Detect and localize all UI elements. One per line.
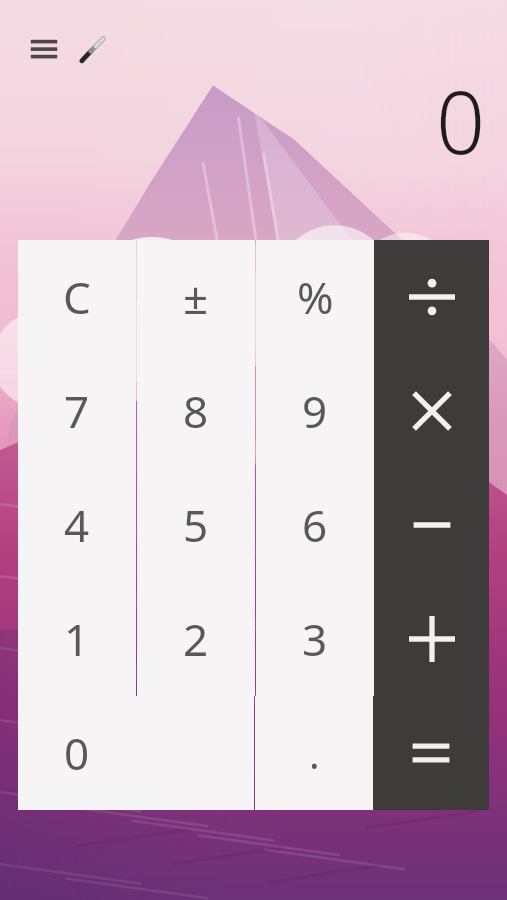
button[interactable]: 4	[18, 468, 136, 582]
button[interactable]: Multiply	[374, 354, 489, 468]
staticText: 0	[64, 723, 90, 783]
staticText: 7	[64, 381, 90, 441]
button[interactable]: Menu	[22, 28, 66, 72]
staticText: 8	[183, 381, 209, 441]
button[interactable]: 8	[137, 354, 255, 468]
button[interactable]: ±	[137, 240, 255, 354]
staticText: %	[297, 267, 334, 327]
button[interactable]: Divide	[374, 240, 489, 354]
button[interactable]: 6	[256, 468, 374, 582]
staticText: 4	[64, 495, 90, 555]
button[interactable]: 9	[256, 354, 374, 468]
button[interactable]: C	[18, 240, 136, 354]
staticText: 2	[183, 609, 209, 669]
staticText: 0	[435, 62, 485, 179]
staticText: C	[63, 267, 91, 327]
button[interactable]: 1	[18, 582, 136, 696]
button[interactable]: Subtract	[374, 468, 489, 582]
button[interactable]: .	[255, 696, 373, 810]
staticText: ±	[183, 267, 209, 327]
button[interactable]: Theme	[70, 28, 114, 72]
button[interactable]: %	[256, 240, 374, 354]
staticText: 3	[302, 609, 328, 669]
staticText: 9	[302, 381, 328, 441]
staticText: 6	[302, 495, 328, 555]
button[interactable]: 2	[137, 582, 255, 696]
button[interactable]: 7	[18, 354, 136, 468]
button[interactable]: 0	[18, 696, 254, 810]
button[interactable]: 3	[256, 582, 374, 696]
button[interactable]: 5	[137, 468, 255, 582]
button[interactable]: Equals	[373, 696, 489, 810]
button[interactable]: Add	[374, 582, 489, 696]
staticText: 5	[183, 495, 209, 555]
staticText: 1	[64, 609, 90, 669]
staticText: .	[309, 726, 320, 780]
